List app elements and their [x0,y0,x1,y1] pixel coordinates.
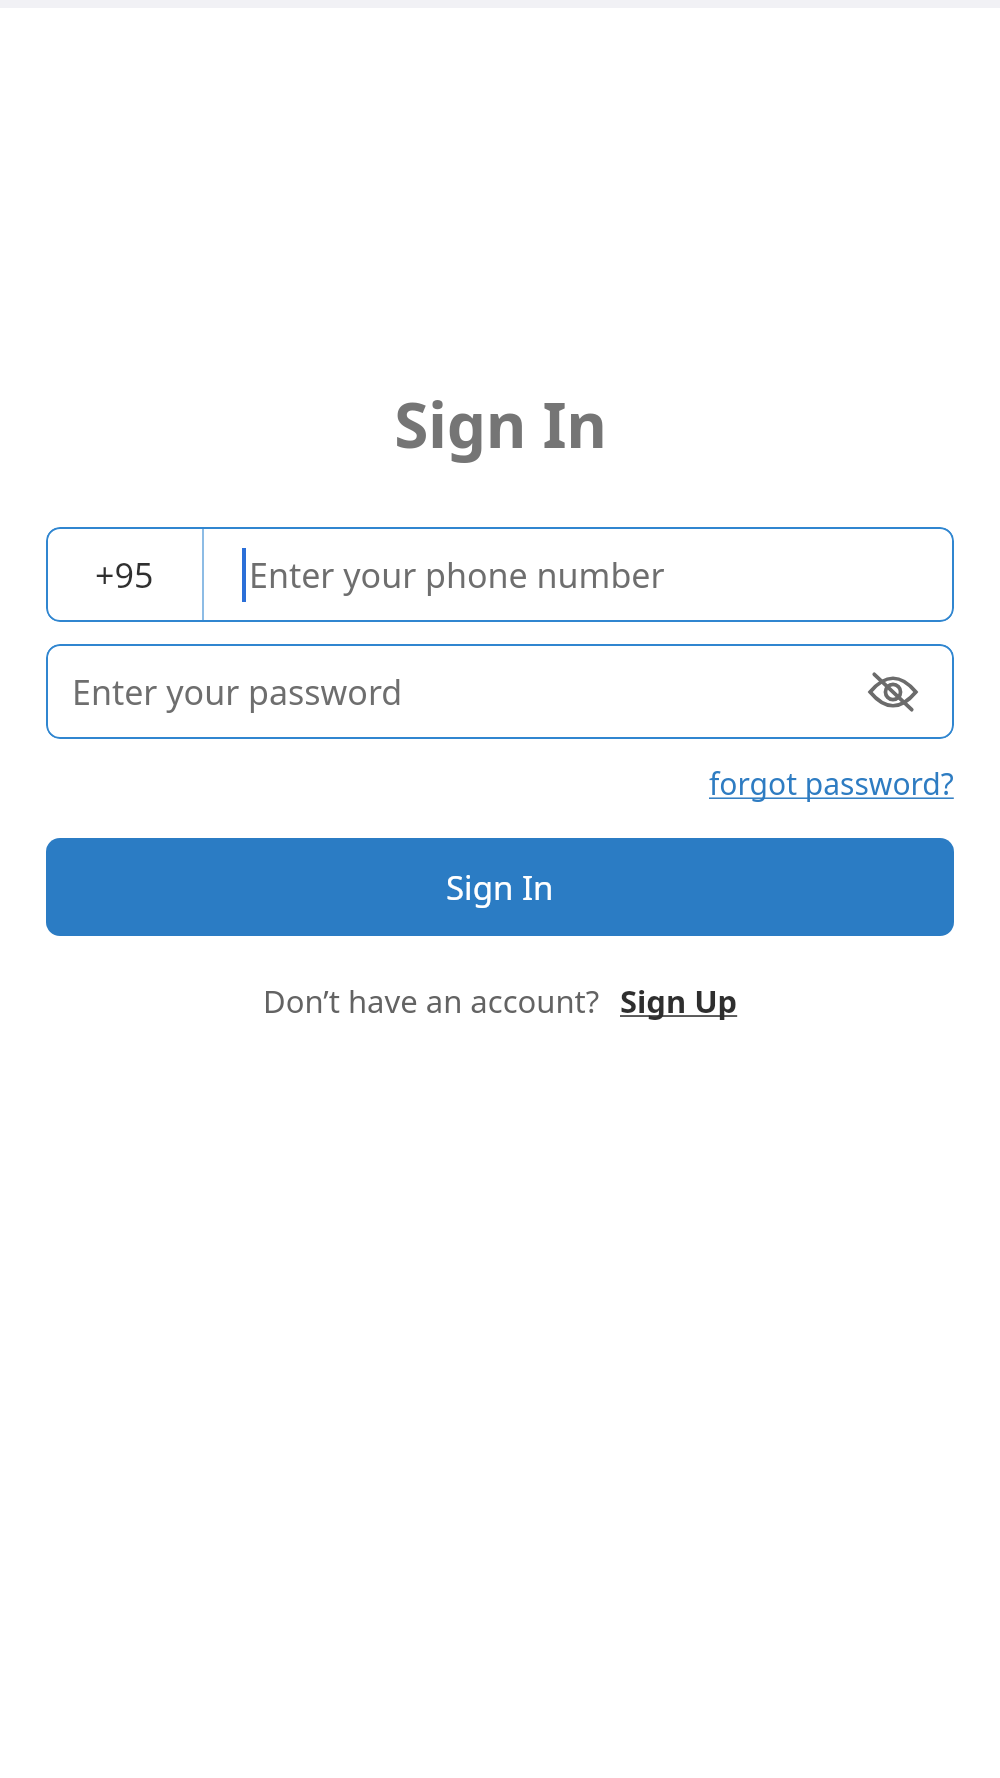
button[interactable]: Sign Up [620,980,738,1022]
staticText: Sign In [446,865,554,910]
button[interactable]: Show password [854,653,932,731]
button[interactable]: Sign In [46,838,954,936]
button[interactable]: +95 [46,527,954,622]
staticText: Sign In [394,382,607,466]
button[interactable]: Enter your password [46,644,954,739]
staticText: Sign Up [620,980,738,1022]
staticText: forgot password? [709,763,954,804]
button[interactable]: forgot password? [709,763,954,804]
staticText: +95 [95,552,154,598]
staticText: Don’t have an account? [263,980,600,1022]
staticText: Enter your phone number [249,552,665,598]
button[interactable]: +95 [46,527,202,622]
staticText: Enter your password [72,669,854,715]
